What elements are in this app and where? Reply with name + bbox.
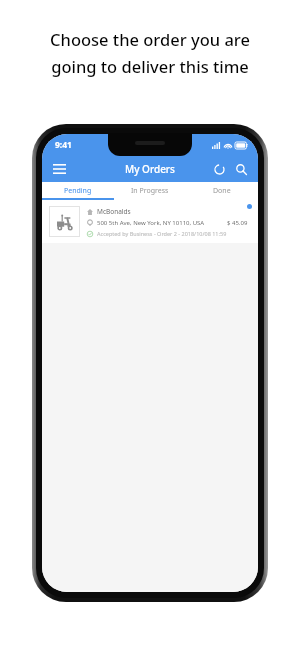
staticText: 500 5th Ave, New York, NY 10110, USA — [97, 219, 205, 227]
staticText: In Progress — [131, 186, 169, 196]
staticText: $ 45.09 — [227, 219, 248, 227]
staticText: going to deliver this time — [51, 55, 249, 77]
button[interactable]: Refresh — [209, 159, 229, 179]
staticText: 9:41 — [55, 139, 72, 151]
staticText: My Orders — [125, 162, 175, 176]
staticText: McBonalds — [97, 207, 131, 216]
staticText: Choose the order you are — [50, 28, 250, 50]
staticText: Accepted by Business - Order 2 - 2018/10… — [97, 230, 227, 237]
button[interactable]: Menu — [49, 159, 69, 179]
button[interactable]: Done — [186, 182, 258, 200]
staticText: Pending — [64, 186, 92, 196]
button[interactable]: Search — [231, 159, 251, 179]
button[interactable]: McBonalds — [42, 200, 258, 243]
button[interactable]: Pending — [42, 182, 114, 200]
button[interactable]: In Progress — [114, 182, 186, 200]
staticText: Done — [213, 186, 231, 196]
